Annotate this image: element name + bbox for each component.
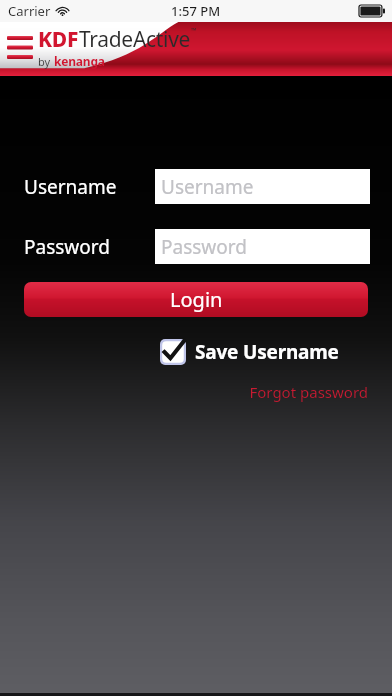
button[interactable]: Save Username bbox=[160, 339, 339, 365]
staticText: KDF bbox=[38, 25, 79, 54]
button[interactable]: Password bbox=[155, 229, 370, 264]
staticText: 1:57 PM bbox=[171, 2, 221, 20]
staticText: by bbox=[38, 54, 54, 69]
staticText: Password bbox=[24, 234, 110, 260]
button[interactable]: Username bbox=[155, 169, 370, 204]
button[interactable]: Forgot password bbox=[249, 382, 368, 402]
staticText: ™ bbox=[191, 26, 197, 36]
staticText: TradeActive bbox=[79, 25, 191, 54]
staticText: Password bbox=[161, 234, 247, 260]
staticText: Login bbox=[170, 286, 223, 313]
staticText: kenanga bbox=[54, 53, 105, 69]
staticText: Carrier bbox=[8, 2, 51, 20]
staticText: Save Username bbox=[195, 339, 339, 365]
staticText: Username bbox=[161, 174, 254, 200]
button[interactable]: Login bbox=[24, 282, 368, 317]
staticText: Username bbox=[24, 174, 117, 200]
button[interactable]: Menu bbox=[3, 32, 37, 62]
staticText: Forgot password bbox=[249, 382, 368, 402]
